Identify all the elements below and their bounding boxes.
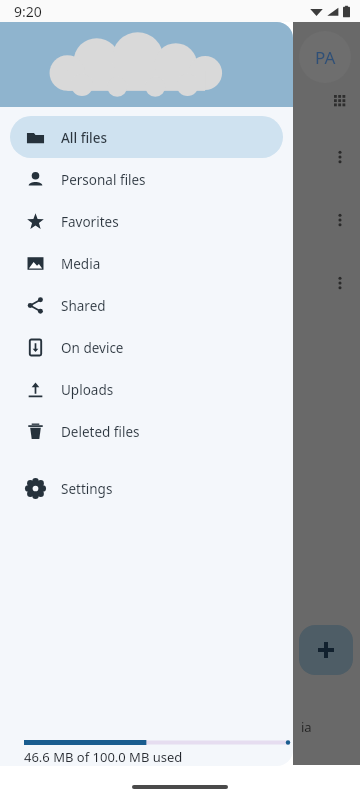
staticText: Uploads [61, 381, 114, 399]
button[interactable]: More options [329, 146, 351, 168]
button[interactable]: Favorites [10, 200, 283, 242]
button[interactable]: Uploads [10, 368, 283, 410]
button[interactable]: Account [299, 31, 351, 83]
button[interactable]: Deleted files [10, 410, 283, 452]
button[interactable]: Grid view [329, 90, 351, 112]
button[interactable]: On device [10, 326, 283, 368]
staticText: ia [301, 718, 312, 736]
staticText: All files [61, 129, 108, 147]
button[interactable]: Add [299, 625, 353, 675]
button[interactable]: Personal files [10, 158, 283, 200]
staticText: 46.6 MB of 100.0 MB used [24, 748, 183, 766]
button[interactable]: More options [329, 272, 351, 294]
staticText: Personal files [61, 171, 146, 189]
button[interactable]: Shared [10, 284, 283, 326]
button[interactable]: All files [10, 116, 283, 158]
staticText: On device [61, 339, 124, 357]
staticText: Settings [61, 480, 113, 498]
staticText: Favorites [61, 213, 119, 231]
staticText: 9:20 [14, 2, 42, 21]
button[interactable]: Media [10, 242, 283, 284]
button[interactable]: Settings [10, 467, 283, 509]
staticText: Shared [61, 297, 106, 315]
button[interactable]: More options [329, 209, 351, 231]
staticText: Deleted files [61, 423, 140, 441]
staticText: Media [61, 255, 101, 273]
staticText: PA [315, 46, 336, 69]
